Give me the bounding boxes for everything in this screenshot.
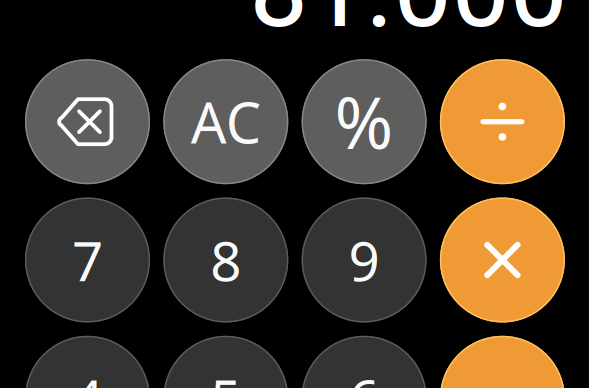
staticText: AC (191, 84, 261, 159)
staticText: 9 (349, 224, 380, 296)
button[interactable] (302, 59, 427, 184)
button[interactable] (302, 336, 427, 388)
button[interactable] (163, 197, 288, 322)
staticText: 7 (72, 224, 103, 296)
button[interactable] (25, 197, 150, 322)
button[interactable]: Delete (25, 59, 150, 184)
button[interactable] (25, 336, 150, 388)
staticText: 5 (210, 362, 241, 388)
staticText: 6 (349, 362, 380, 388)
button[interactable] (163, 59, 288, 184)
staticText: 8 (210, 224, 241, 296)
button[interactable]: Multiply (440, 197, 565, 322)
button[interactable] (302, 197, 427, 322)
button[interactable] (163, 336, 288, 388)
staticText: 4 (72, 362, 103, 388)
button[interactable]: Subtract (440, 336, 565, 388)
button[interactable]: Divide (440, 59, 565, 184)
staticText: % (335, 75, 394, 169)
staticText: 81.000 (249, 0, 567, 52)
